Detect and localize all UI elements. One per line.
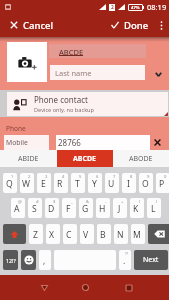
button[interactable]: D: [45, 198, 59, 218]
button[interactable]: Back: [34, 275, 54, 300]
staticText: 2: [28, 174, 31, 180]
button[interactable]: W: [20, 173, 34, 193]
staticText: K: [133, 203, 139, 215]
button[interactable]: C: [63, 224, 77, 244]
staticText: 9: [147, 174, 150, 180]
staticText: U: [108, 178, 115, 190]
staticText: G: [82, 203, 89, 215]
button[interactable]: B: [97, 224, 111, 244]
staticText: 5: [79, 174, 82, 180]
staticText: 0: [164, 174, 167, 180]
staticText: X: [49, 229, 55, 241]
button[interactable]: Clear phone number: [150, 135, 165, 150]
staticText: 3: [45, 174, 48, 180]
staticText: A: [14, 203, 20, 215]
button[interactable]: Y: [88, 173, 102, 193]
staticText: ): [156, 199, 158, 205]
staticText: ABCDE: [73, 154, 97, 164]
button[interactable]: Mobile: [4, 135, 49, 150]
staticText: P: [159, 178, 165, 190]
staticText: J: [118, 203, 121, 215]
button[interactable]: V: [80, 224, 94, 244]
staticText: I: [127, 178, 130, 190]
button[interactable]: ABIDE: [0, 150, 57, 167]
button[interactable]: H: [96, 198, 110, 218]
button[interactable]: I: [122, 173, 136, 193]
staticText: E: [41, 178, 46, 190]
button[interactable]: More options: [153, 13, 169, 37]
staticText: 6: [96, 174, 99, 180]
button[interactable]: P: [156, 173, 169, 193]
button[interactable]: L: [147, 198, 161, 218]
button[interactable]: Q: [3, 173, 17, 193]
button[interactable]: R: [54, 173, 68, 193]
staticText: 1: [11, 174, 14, 180]
button[interactable]: O: [139, 173, 153, 193]
button[interactable]: 28766: [56, 135, 150, 150]
staticText: Mobile: [6, 138, 28, 147]
button[interactable]: S: [28, 198, 42, 218]
staticText: (: [139, 199, 141, 205]
button[interactable]: Emoji: [21, 250, 36, 270]
button[interactable]: Home: [75, 275, 95, 300]
button[interactable]: K: [130, 198, 144, 218]
button[interactable]: Done: [111, 13, 149, 37]
staticText: D: [48, 203, 55, 215]
staticText: 8: [130, 174, 133, 180]
button[interactable]: ABCDE: [49, 44, 146, 58]
button[interactable]: N: [114, 224, 128, 244]
staticText: ?!: [125, 251, 128, 257]
button[interactable]: J: [113, 198, 127, 218]
staticText: _: [71, 199, 73, 205]
staticText: Q: [6, 178, 13, 190]
button[interactable]: Recents: [119, 275, 139, 300]
button[interactable]: A: [11, 198, 25, 218]
button[interactable]: Cancel: [10, 13, 54, 37]
button[interactable]: T: [71, 173, 85, 193]
staticText: $: [53, 199, 56, 205]
staticText: O: [142, 178, 149, 190]
button[interactable]: ABODE: [113, 150, 169, 167]
button[interactable]: X: [46, 224, 60, 244]
staticText: Next: [143, 255, 159, 265]
staticText: Z: [33, 229, 38, 241]
button[interactable]: U: [105, 173, 119, 193]
button[interactable]: Last name: [50, 65, 145, 80]
staticText: Device only, no backup: [34, 106, 95, 114]
button[interactable]: 12!?: [3, 250, 18, 270]
staticText: T: [75, 178, 80, 190]
staticText: @: [18, 199, 22, 205]
staticText: 08:19: [147, 2, 167, 12]
button[interactable]: G: [79, 198, 93, 218]
button[interactable]: Backspace: [148, 224, 169, 244]
button[interactable]: Expand name: [150, 66, 166, 83]
staticText: M: [133, 229, 141, 241]
button[interactable]: Z: [29, 224, 43, 244]
staticText: ABIDE: [18, 154, 39, 164]
staticText: C: [66, 229, 72, 241]
button[interactable]: Add contact photo: [7, 42, 47, 82]
button[interactable]: E: [37, 173, 51, 193]
staticText: -: [105, 199, 107, 205]
button[interactable]: Phone contact: [0, 90, 169, 117]
staticText: S: [32, 203, 37, 215]
staticText: Phone: [6, 124, 26, 133]
staticText: B: [100, 229, 106, 241]
button[interactable]: Shift: [3, 224, 26, 244]
staticText: W: [22, 178, 30, 190]
button[interactable]: Next: [134, 250, 168, 270]
staticText: 7: [113, 174, 116, 180]
staticText: ,: [43, 255, 46, 267]
staticText: 4: [62, 174, 65, 180]
staticText: +: [121, 199, 124, 205]
staticText: 2: [111, 4, 114, 11]
staticText: 28766: [58, 137, 81, 148]
button[interactable]: ,: [39, 250, 51, 270]
staticText: 12!?: [6, 257, 16, 264]
button[interactable]: .: [119, 250, 131, 270]
button[interactable]: F: [62, 198, 76, 218]
button[interactable]: M: [131, 224, 145, 244]
button[interactable]: ABCDE: [57, 150, 113, 167]
staticText: V: [83, 229, 89, 241]
